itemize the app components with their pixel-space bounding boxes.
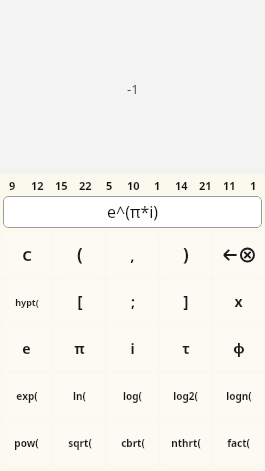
button[interactable]: Backspace xyxy=(213,232,264,277)
staticText: fact( xyxy=(227,436,250,450)
button[interactable]: [ xyxy=(54,279,105,324)
button[interactable]: nthrt( xyxy=(160,420,211,465)
button[interactable]: 10 xyxy=(121,174,145,196)
button[interactable]: 14 xyxy=(169,174,193,196)
staticText: 1 xyxy=(154,178,161,193)
button[interactable]: log( xyxy=(107,373,158,418)
button[interactable]: log2( xyxy=(160,373,211,418)
button[interactable]: 1 xyxy=(145,174,169,196)
staticText: π xyxy=(74,339,85,358)
button[interactable]: logn( xyxy=(213,373,264,418)
staticText: ] xyxy=(183,291,189,313)
staticText: C xyxy=(22,245,32,265)
staticText: 10 xyxy=(127,178,140,193)
button[interactable]: ; xyxy=(107,279,158,324)
button[interactable]: 11 xyxy=(217,174,241,196)
staticText: 5 xyxy=(106,178,113,193)
staticText: exp( xyxy=(16,389,38,403)
staticText: nthrt( xyxy=(171,436,201,450)
staticText: e xyxy=(22,339,31,358)
button[interactable]: e xyxy=(1,326,52,371)
button[interactable]: pow( xyxy=(1,420,52,465)
button[interactable]: 5 xyxy=(97,174,121,196)
staticText: hypt( xyxy=(15,296,39,308)
button[interactable]: 21 xyxy=(193,174,217,196)
staticText: cbrt( xyxy=(121,436,145,450)
staticText: 15 xyxy=(55,178,68,193)
button[interactable]: ln( xyxy=(54,373,105,418)
button[interactable]: π xyxy=(54,326,105,371)
button[interactable]: e^(π*i) xyxy=(3,196,262,228)
button[interactable]: 1 xyxy=(241,174,265,196)
button[interactable]: ] xyxy=(160,279,211,324)
staticText: log2( xyxy=(173,389,198,403)
staticText: pow( xyxy=(14,436,39,450)
staticText: 21 xyxy=(199,178,212,193)
staticText: [ xyxy=(77,291,83,313)
button[interactable]: ϕ xyxy=(213,326,264,371)
staticText: i xyxy=(130,339,135,358)
staticText: 9 xyxy=(9,178,16,193)
staticText: 12 xyxy=(31,178,44,193)
staticText: ϕ xyxy=(233,339,245,358)
staticText: ) xyxy=(183,243,189,266)
staticText: logn( xyxy=(226,389,252,403)
staticText: x xyxy=(234,292,243,311)
staticText: sqrt( xyxy=(68,436,92,450)
button[interactable]: 12 xyxy=(25,174,49,196)
staticText: 1 xyxy=(250,178,257,193)
button[interactable]: 22 xyxy=(73,174,97,196)
staticText: 11 xyxy=(223,178,236,193)
staticText: e^(π*i) xyxy=(107,201,159,223)
button[interactable]: x xyxy=(213,279,264,324)
staticText: 14 xyxy=(175,178,188,193)
button[interactable]: C xyxy=(1,232,52,277)
button[interactable]: cbrt( xyxy=(107,420,158,465)
button[interactable]: sqrt( xyxy=(54,420,105,465)
button[interactable]: fact( xyxy=(213,420,264,465)
button[interactable]: , xyxy=(107,232,158,277)
button[interactable]: hypt( xyxy=(1,279,52,324)
staticText: -1 xyxy=(127,80,139,98)
button[interactable]: τ xyxy=(160,326,211,371)
button[interactable]: ) xyxy=(160,232,211,277)
staticText: τ xyxy=(182,339,190,358)
button[interactable]: 15 xyxy=(49,174,73,196)
button[interactable]: exp( xyxy=(1,373,52,418)
button[interactable]: ( xyxy=(54,232,105,277)
staticText: log( xyxy=(123,389,142,403)
staticText: ( xyxy=(77,243,83,266)
button[interactable]: i xyxy=(107,326,158,371)
staticText: , xyxy=(130,245,135,265)
button[interactable]: 9 xyxy=(0,174,25,196)
staticText: ln( xyxy=(73,389,86,403)
staticText: ; xyxy=(131,292,135,311)
staticText: 22 xyxy=(79,178,92,193)
